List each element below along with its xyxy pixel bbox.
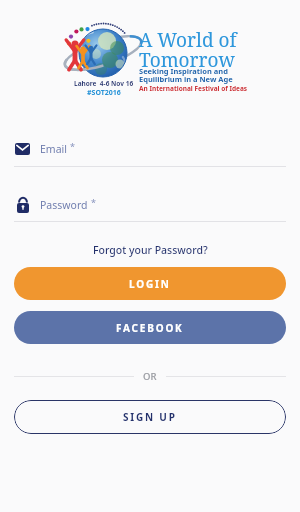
button[interactable]: SIGN UP [14,400,286,434]
staticText: Equilibrium in a New Age [139,74,233,84]
staticText: Seeking Inspiration and [139,66,228,76]
staticText: Password [40,198,88,212]
staticText: * [70,140,75,152]
staticText: SIGN UP [123,410,177,424]
staticText: An International Festival of Ideas [139,84,248,93]
staticText: A World of [139,27,237,53]
button[interactable]: Forgot your Password? [93,243,208,257]
staticText: LOGIN [129,277,171,291]
button[interactable]: LOGIN [14,267,286,300]
button[interactable]: Email [0,138,300,160]
button[interactable]: FACEBOOK [14,311,286,344]
staticText: Tomorrow [139,47,235,73]
staticText: OR [143,370,157,383]
button[interactable]: Password [0,194,300,216]
staticText: FACEBOOK [116,321,184,335]
staticText: * [91,196,96,208]
staticText: Email [40,142,67,156]
staticText: Lahore 4-6 Nov 16 [74,79,134,88]
staticText: #SOT2016 [87,88,121,98]
staticText: Forgot your Password? [93,243,208,257]
